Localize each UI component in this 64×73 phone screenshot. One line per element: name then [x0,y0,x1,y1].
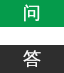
staticText: 问 [23,2,41,25]
staticText: 答 [23,48,41,71]
button[interactable]: 答 [0,45,64,73]
button[interactable]: 问 [0,0,64,27]
